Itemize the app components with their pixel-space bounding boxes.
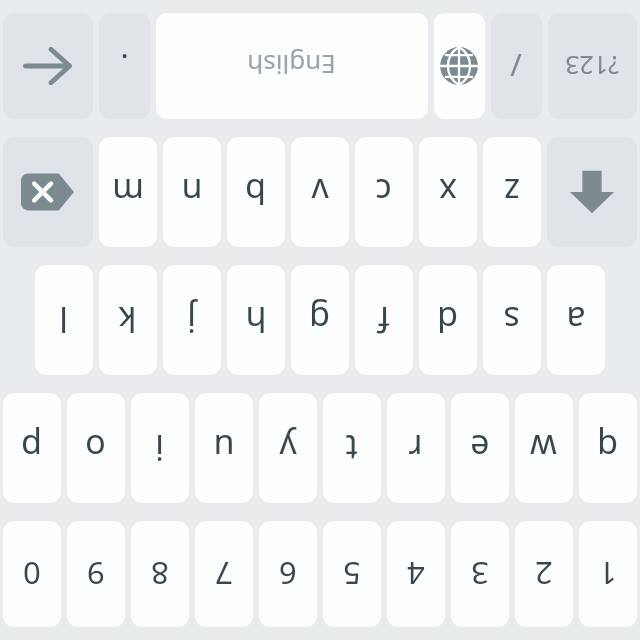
staticText: p <box>21 425 42 471</box>
button[interactable]: c <box>355 137 413 247</box>
button[interactable]: y <box>259 393 317 503</box>
button[interactable]: 7 <box>195 521 253 627</box>
staticText: 1 <box>599 553 617 595</box>
button[interactable]: e <box>451 393 509 503</box>
staticText: s <box>503 297 520 343</box>
button[interactable]: 9 <box>67 521 125 627</box>
button[interactable]: a <box>547 265 605 375</box>
staticText: 4 <box>407 553 425 595</box>
button[interactable]: u <box>195 393 253 503</box>
staticText: . <box>120 45 129 87</box>
staticText: m <box>112 169 144 215</box>
staticText: g <box>309 297 330 343</box>
button[interactable]: j <box>163 265 221 375</box>
staticText: 8 <box>151 553 169 595</box>
staticText: i <box>155 425 164 471</box>
button[interactable]: p <box>3 393 61 503</box>
button[interactable]: g <box>291 265 349 375</box>
staticText: 3 <box>471 553 489 595</box>
staticText: h <box>245 297 267 343</box>
staticText: t <box>345 425 358 471</box>
button[interactable]: . <box>99 13 150 119</box>
button[interactable]: Enter <box>3 13 93 119</box>
button[interactable]: ?123 <box>548 13 637 119</box>
staticText: n <box>181 169 203 215</box>
button[interactable]: / <box>491 13 542 119</box>
button[interactable]: q <box>579 393 637 503</box>
button[interactable]: Backspace <box>3 137 93 247</box>
button[interactable]: 6 <box>259 521 317 627</box>
staticText: q <box>597 425 618 471</box>
staticText: v <box>311 169 329 215</box>
staticText: r <box>408 425 423 471</box>
button[interactable]: Shift <box>547 137 637 247</box>
button[interactable]: v <box>291 137 349 247</box>
button[interactable]: d <box>419 265 477 375</box>
staticText: English <box>247 48 336 83</box>
button[interactable]: o <box>67 393 125 503</box>
staticText: a <box>566 297 586 343</box>
button[interactable]: w <box>515 393 573 503</box>
staticText: e <box>470 425 490 471</box>
staticText: / <box>510 45 522 87</box>
staticText: f <box>378 297 390 343</box>
button[interactable]: b <box>227 137 285 247</box>
staticText: 7 <box>215 553 233 595</box>
button[interactable]: 0 <box>3 521 61 627</box>
button[interactable]: 2 <box>515 521 573 627</box>
button[interactable]: 5 <box>323 521 381 627</box>
button[interactable]: m <box>99 137 157 247</box>
button[interactable]: English <box>156 13 428 119</box>
button[interactable]: Change language <box>434 13 485 119</box>
staticText: c <box>375 169 392 215</box>
staticText: w <box>530 425 557 471</box>
button[interactable]: k <box>99 265 157 375</box>
button[interactable]: x <box>419 137 477 247</box>
staticText: d <box>437 297 458 343</box>
staticText: j <box>187 297 196 343</box>
staticText: x <box>439 169 457 215</box>
button[interactable]: t <box>323 393 381 503</box>
button[interactable]: 4 <box>387 521 445 627</box>
staticText: 2 <box>535 553 553 595</box>
button[interactable]: l <box>35 265 93 375</box>
button[interactable]: n <box>163 137 221 247</box>
button[interactable]: r <box>387 393 445 503</box>
staticText: 6 <box>279 553 297 595</box>
staticText: z <box>504 169 520 215</box>
staticText: ?123 <box>565 49 619 83</box>
staticText: l <box>59 297 68 343</box>
staticText: 9 <box>87 553 105 595</box>
button[interactable]: i <box>131 393 189 503</box>
button[interactable]: z <box>483 137 541 247</box>
staticText: y <box>279 425 297 471</box>
staticText: u <box>213 425 235 471</box>
button[interactable]: 8 <box>131 521 189 627</box>
button[interactable]: h <box>227 265 285 375</box>
button[interactable]: 1 <box>579 521 637 627</box>
staticText: k <box>118 297 137 343</box>
button[interactable]: s <box>483 265 541 375</box>
staticText: 0 <box>23 553 41 595</box>
staticText: 5 <box>343 553 361 595</box>
staticText: b <box>245 169 266 215</box>
button[interactable]: f <box>355 265 413 375</box>
staticText: o <box>85 425 106 471</box>
button[interactable]: 3 <box>451 521 509 627</box>
